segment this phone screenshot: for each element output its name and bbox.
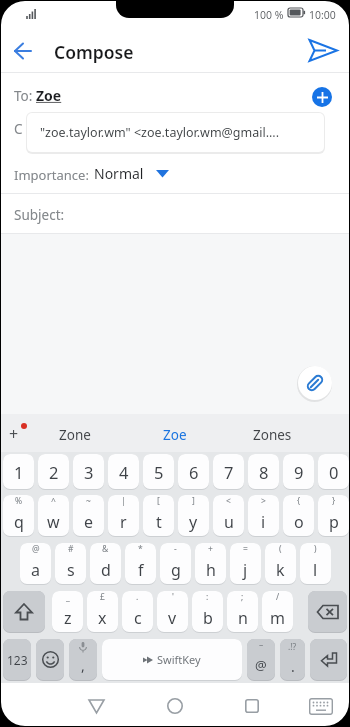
button[interactable]: ) [300,543,331,584]
button[interactable] [312,87,332,107]
staticText: v [168,607,177,629]
button[interactable]: 3 [73,454,104,489]
button[interactable]: 0 [318,454,349,489]
staticText: ^ [51,495,56,507]
staticText: > [261,495,266,507]
button[interactable] [298,366,332,400]
staticText: f [138,559,144,581]
button[interactable]: ^ [38,495,69,536]
button[interactable]: SwiftKey [102,639,242,680]
staticText: 1 [14,461,24,483]
button[interactable]: 1 [3,454,34,489]
button[interactable]: "zoe.taylor.wm" <zoe.taylor.wm@gmail.... [27,113,324,152]
button[interactable]: 2 [38,454,69,489]
button[interactable] [80,692,112,720]
button[interactable]: ( [265,543,296,584]
button[interactable]: ~ [73,495,104,536]
staticText: , [81,656,85,675]
button[interactable]: 123 [3,639,31,680]
button[interactable] [8,37,38,65]
button[interactable] [3,591,45,632]
staticText: h [206,559,216,581]
button[interactable]: > [248,495,279,536]
staticText: x [98,607,107,629]
button[interactable]: # [55,543,86,584]
button[interactable] [305,692,337,720]
staticText: n [238,607,248,629]
staticText: & [102,543,109,555]
staticText: [ [157,495,160,507]
button[interactable]: 8 [248,454,279,489]
staticText: ) [314,543,317,555]
staticText: "zoe.taylor.wm" <zoe.taylor.wm@gmail.... [40,124,280,141]
button[interactable]: _ [52,591,83,632]
staticText: u [224,511,234,533]
button[interactable]: < [213,495,244,536]
staticText: t [156,511,162,533]
staticText: + [208,543,213,555]
button[interactable]: @ [20,543,51,584]
button[interactable]: ; [227,591,258,632]
staticText: Subject: [14,206,65,224]
staticText: Zone [59,426,91,444]
button[interactable]: 6 [178,454,209,489]
button[interactable]: – [247,639,275,680]
button[interactable]: 4 [108,454,139,489]
button[interactable]: Zoe [36,86,62,105]
staticText: Zoe [36,86,62,105]
staticText: Zoe [163,426,187,444]
button[interactable]: % [3,495,34,536]
staticText: } [332,495,336,507]
button[interactable]: - [160,543,191,584]
button[interactable]: + [4,418,34,448]
button[interactable] [302,36,344,66]
staticText: : [206,591,209,603]
staticText: a [31,559,40,581]
button[interactable]: : [192,591,223,632]
button[interactable]: . [122,591,153,632]
button[interactable]: ' [157,591,188,632]
staticText: . [291,657,295,676]
staticText: r [120,511,127,533]
button[interactable]: { [283,495,314,536]
staticText: ; [241,591,244,603]
button[interactable]: Zone [30,417,120,453]
button[interactable]: 9 [283,454,314,489]
button[interactable]: * [125,543,156,584]
button[interactable]: .!? [280,639,305,680]
button[interactable]: 7 [213,454,244,489]
staticText: 123 [7,652,28,668]
staticText: 2 [49,461,59,483]
staticText: Zones [253,426,292,444]
button[interactable] [36,639,64,680]
staticText: d [101,559,111,581]
button[interactable]: & [90,543,121,584]
staticText: £ [100,591,105,603]
button[interactable]: / [262,591,293,632]
button[interactable]: | [108,495,139,536]
button[interactable] [148,164,178,182]
staticText: # [68,543,74,555]
staticText: ( [279,543,282,555]
button[interactable]: = [230,543,261,584]
button[interactable] [159,692,191,720]
button[interactable] [310,639,347,680]
staticText: l [313,559,318,581]
button[interactable]: + [195,543,226,584]
staticText: 0 [329,461,339,483]
staticText: 5 [154,461,164,483]
button[interactable]: } [318,495,349,536]
button[interactable]: 5 [143,454,174,489]
button[interactable]: [ [143,495,174,536]
button[interactable] [236,692,268,720]
button[interactable] [308,591,347,632]
button[interactable]: ] [178,495,209,536]
staticText: Compose [54,40,134,64]
button[interactable]: Zones [227,417,317,453]
button[interactable]: Zoe [130,417,220,453]
staticText: g [171,559,181,581]
staticText: 6 [189,461,199,483]
button[interactable]: £ [87,591,118,632]
button[interactable]: , [69,639,97,680]
staticText: j [243,559,248,581]
